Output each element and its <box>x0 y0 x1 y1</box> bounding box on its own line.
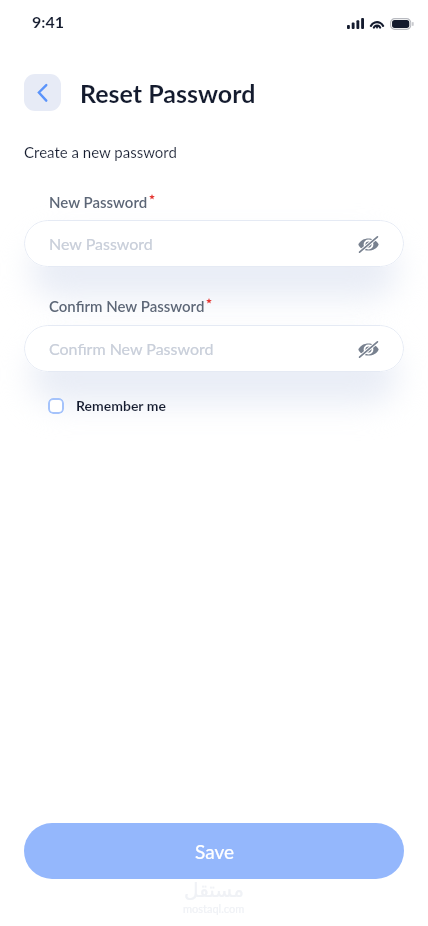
button[interactable]: Show password <box>355 231 381 257</box>
staticText: Confirm New Password <box>49 339 214 358</box>
button[interactable]: Remember me <box>48 397 166 414</box>
staticText: 9:41 <box>32 12 64 31</box>
staticText: Save <box>195 840 234 863</box>
staticText: Reset Password <box>80 78 256 108</box>
staticText: مستقل <box>184 878 244 901</box>
staticText: Remember me <box>76 397 166 414</box>
button[interactable]: New Password <box>24 220 404 267</box>
staticText: New Password <box>49 193 148 211</box>
staticText: Confirm New Password <box>49 297 205 315</box>
button[interactable]: Back <box>24 74 61 111</box>
staticText: New Password <box>49 234 153 253</box>
button[interactable]: Confirm New Password <box>24 325 404 372</box>
staticText: Create a new password <box>24 143 177 161</box>
staticText: mostaql.com <box>183 902 245 915</box>
button[interactable]: Show password <box>355 336 381 362</box>
button[interactable]: Save <box>24 823 404 879</box>
